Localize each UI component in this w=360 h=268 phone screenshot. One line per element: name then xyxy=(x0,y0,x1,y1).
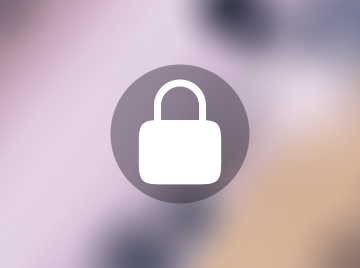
button[interactable]: Locked photo xyxy=(110,64,249,203)
